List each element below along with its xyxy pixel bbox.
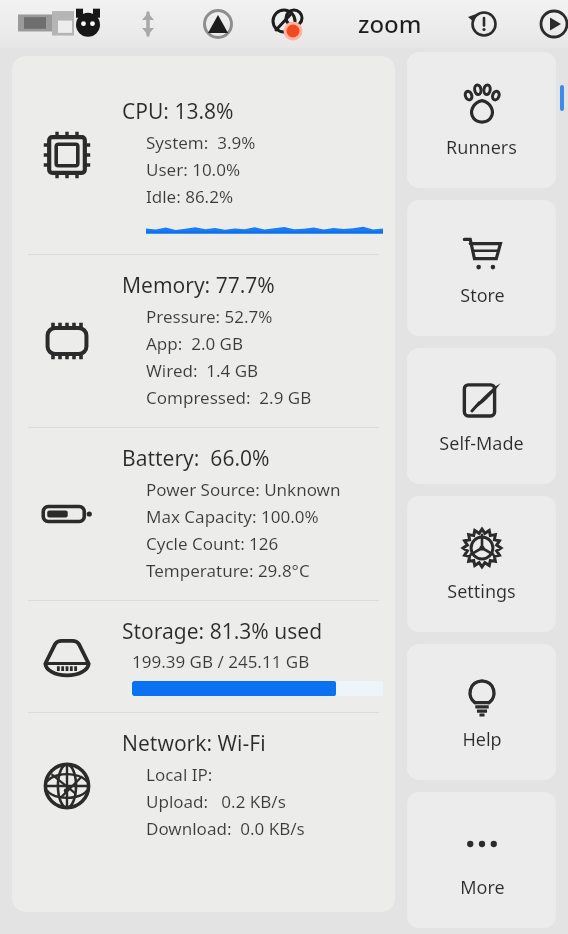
button[interactable]: App icon <box>14 7 110 41</box>
staticText: Wired: 1.4 GB <box>146 359 259 382</box>
staticText: Battery: 66.0% <box>122 444 270 473</box>
staticText: Max Capacity: 100.0% <box>146 505 319 528</box>
button[interactable]: Resize <box>128 7 168 41</box>
staticText: Download: 0.0 KB/s <box>146 817 305 840</box>
button[interactable]: Runners <box>407 52 556 188</box>
staticText: Temperature: 29.8°C <box>146 559 310 582</box>
staticText: Network: Wi-Fi <box>122 729 266 758</box>
staticText: Pressure: 52.7% <box>146 305 273 328</box>
button[interactable]: Memory: 77.7% <box>12 255 395 427</box>
staticText: Compressed: 2.9 GB <box>146 386 312 409</box>
button[interactable]: More <box>407 792 556 928</box>
staticText: zoom <box>358 7 422 40</box>
staticText: App: 2.0 GB <box>146 332 244 355</box>
staticText: 199.39 GB / 245.11 GB <box>132 650 310 673</box>
button[interactable]: Time machine <box>462 7 502 41</box>
button[interactable]: zoom <box>342 6 438 40</box>
button[interactable]: Battery: 66.0% <box>12 428 395 600</box>
staticText: Runners <box>446 135 517 160</box>
staticText: System: 3.9% <box>146 131 256 154</box>
staticText: Help <box>462 727 502 752</box>
staticText: Power Source: Unknown <box>146 478 341 501</box>
staticText: User: 10.0% <box>146 158 241 181</box>
button[interactable]: Storage: 81.3% used <box>12 601 395 712</box>
button[interactable]: AirPlay <box>196 7 240 41</box>
staticText: Settings <box>447 579 516 604</box>
button[interactable]: Store <box>407 200 556 336</box>
staticText: Storage: 81.3% used <box>122 617 323 646</box>
staticText: Store <box>460 283 505 308</box>
button[interactable]: CPU: 13.8% <box>12 56 395 254</box>
staticText: Cycle Count: 126 <box>146 532 279 555</box>
staticText: Self-Made <box>439 431 524 456</box>
button[interactable]: Help <box>407 644 556 780</box>
staticText: Local IP: <box>146 763 213 786</box>
button[interactable]: Settings <box>407 496 556 632</box>
staticText: More <box>460 875 505 900</box>
staticText: Memory: 77.7% <box>122 271 275 300</box>
staticText: Upload: 0.2 KB/s <box>146 790 286 813</box>
staticText: CPU: 13.8% <box>122 97 234 126</box>
button[interactable]: Recording <box>264 7 312 41</box>
button[interactable]: Play <box>534 7 568 41</box>
button[interactable]: Network: Wi-Fi <box>12 713 395 858</box>
button[interactable]: Self-Made <box>407 348 556 484</box>
staticText: Idle: 86.2% <box>146 185 234 208</box>
